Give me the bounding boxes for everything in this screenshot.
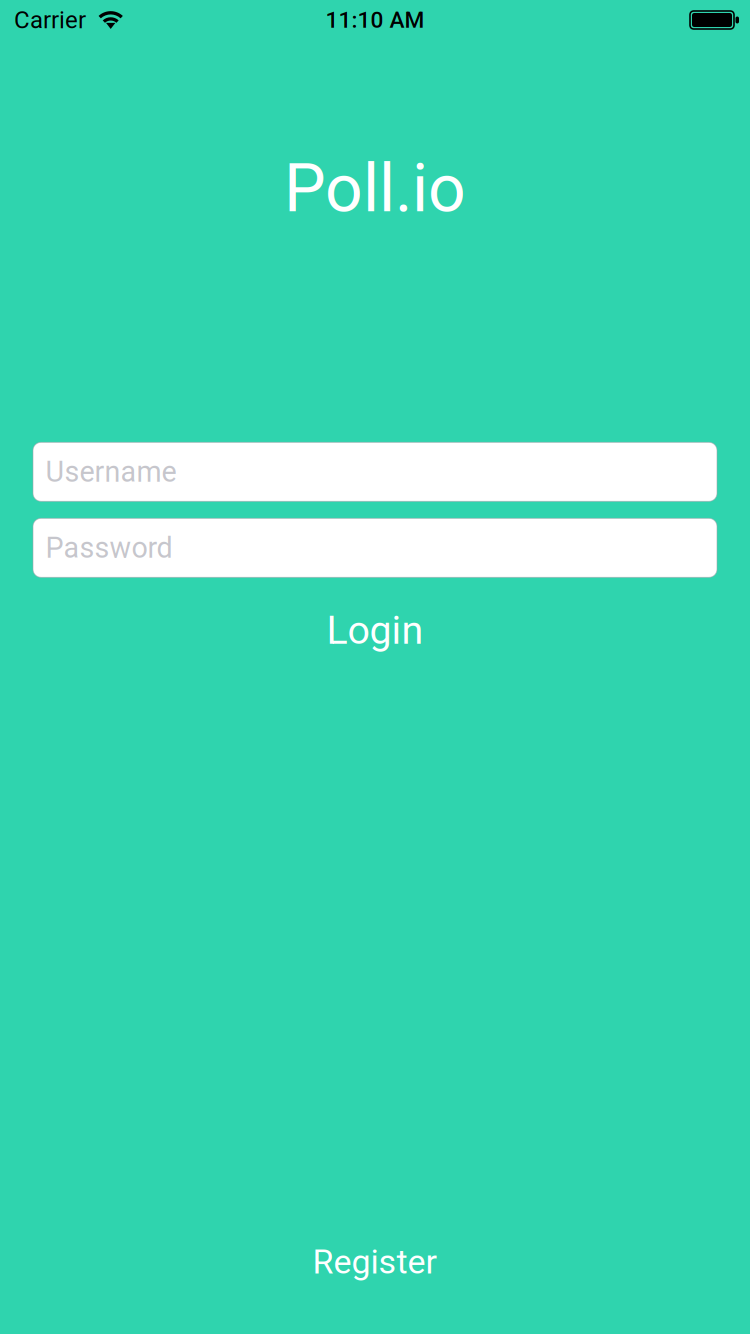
staticText: Poll.io [284, 150, 466, 227]
staticText: Register [312, 1242, 437, 1282]
button[interactable]: Login [33, 607, 717, 653]
button[interactable]: Register [33, 1240, 717, 1284]
staticText: Password [45, 531, 172, 565]
staticText: Login [326, 607, 423, 653]
button[interactable]: Username [33, 442, 717, 501]
staticText: 11:10 AM [325, 7, 424, 33]
staticText: Carrier [14, 6, 86, 34]
button[interactable]: Password [33, 518, 717, 577]
staticText: Username [45, 455, 176, 489]
